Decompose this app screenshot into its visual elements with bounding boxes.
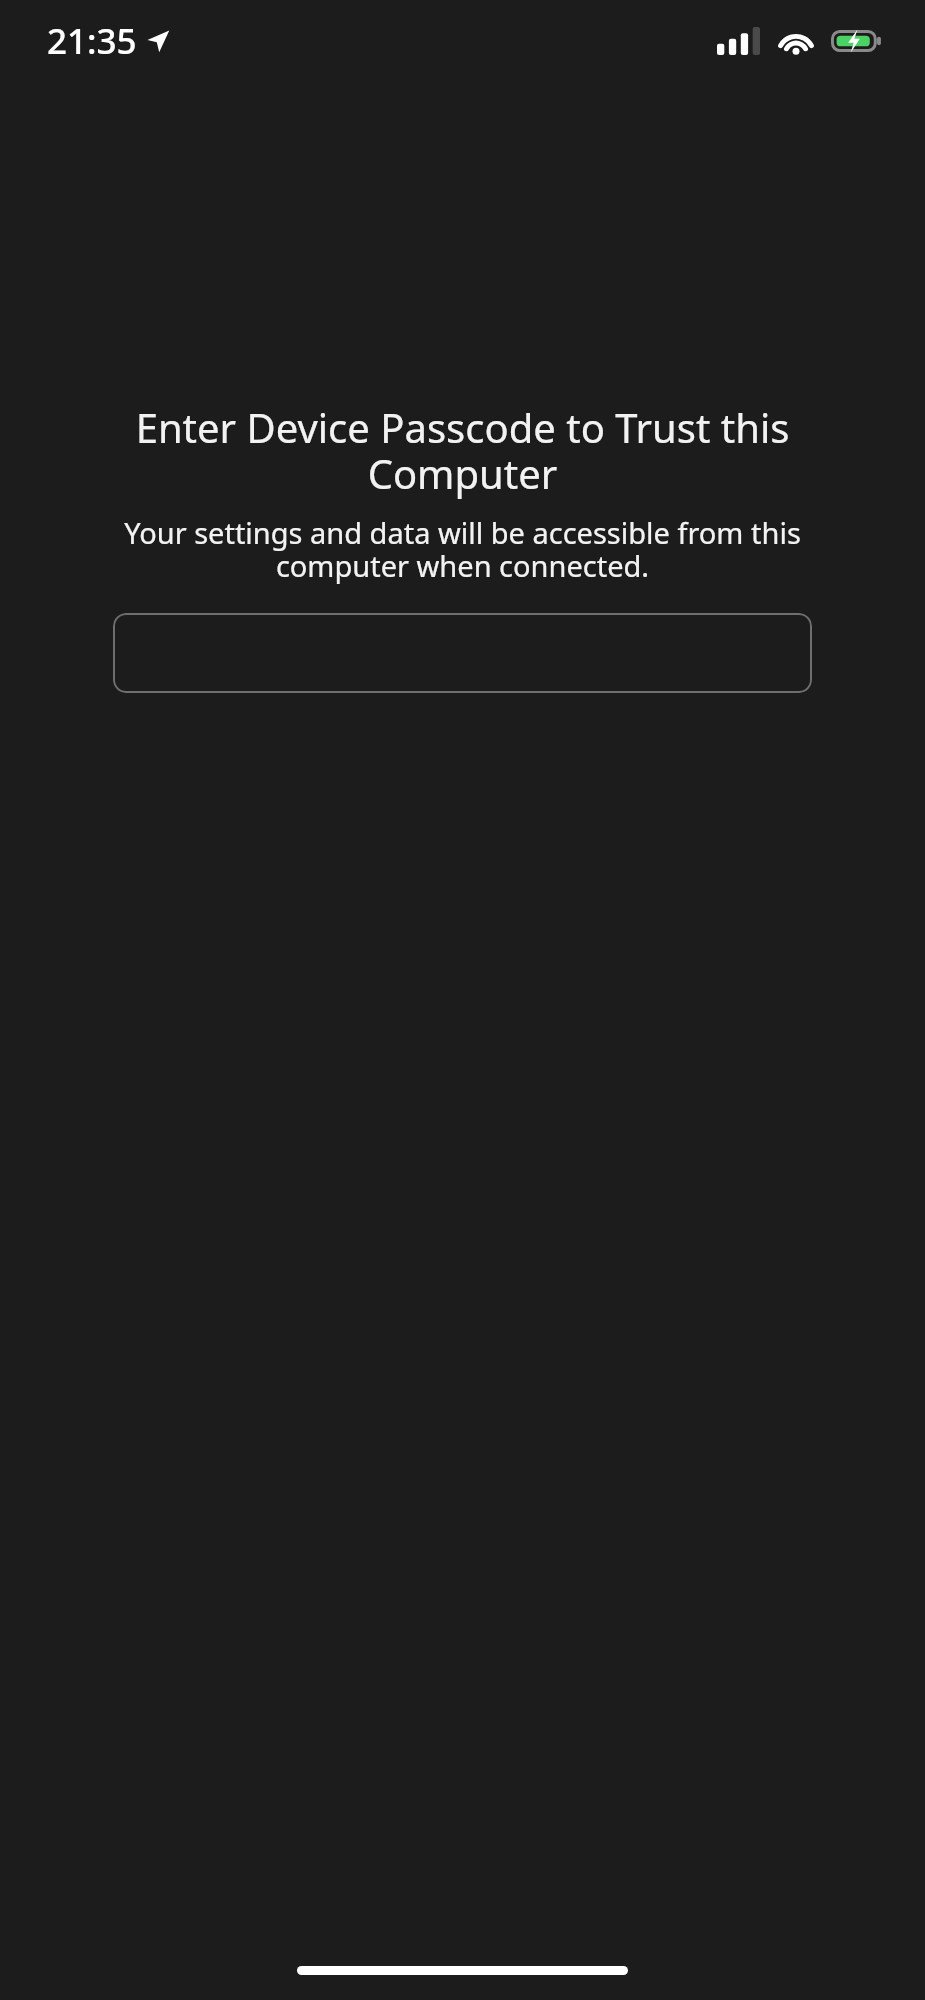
staticText: Enter Device Passcode to Trust this Comp… [102,400,823,501]
staticText: 21:35 [47,17,137,65]
staticText: Your settings and data will be accessibl… [62,513,863,585]
button[interactable]: Passcode field [113,613,812,693]
